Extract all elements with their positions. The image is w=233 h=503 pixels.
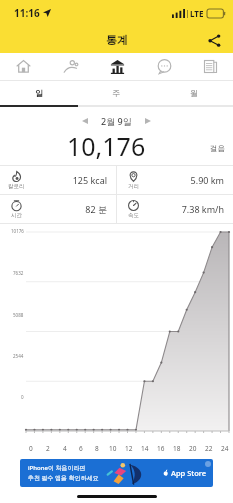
staticText: 걸음: [210, 144, 225, 153]
staticText: 6: [79, 444, 83, 453]
button[interactable]: Home: [0, 53, 47, 80]
button[interactable]: 속도: [117, 195, 233, 223]
staticText: LTE: [190, 8, 204, 19]
staticText: 7.38 km/h: [181, 203, 224, 215]
button[interactable]: 시간: [0, 195, 116, 223]
button[interactable]: Previous day: [77, 113, 93, 129]
staticText: 추천 필수 앱을 확인하세요: [28, 474, 99, 482]
staticText: 10: [109, 444, 117, 453]
button[interactable]: 일: [0, 81, 77, 105]
staticText: 10176: [11, 228, 24, 234]
button[interactable]: 거리: [117, 166, 233, 194]
button[interactable]: Share: [203, 29, 225, 51]
staticText: 8: [95, 444, 99, 453]
staticText: 2: [46, 444, 50, 453]
button[interactable]: Close ad: [205, 461, 211, 467]
staticText: 칼로리: [8, 183, 25, 190]
button[interactable]: Chat: [141, 53, 188, 80]
staticText: 2월 9일: [101, 115, 132, 127]
staticText: 거리: [128, 183, 139, 190]
staticText: 시간: [11, 212, 22, 219]
staticText: 통계: [106, 33, 128, 47]
staticText: 5088: [13, 312, 24, 318]
staticText: 주: [112, 88, 120, 98]
button[interactable]: News: [188, 53, 233, 80]
staticText: 125 kcal: [72, 174, 107, 186]
staticText: 24: [221, 444, 229, 453]
staticText: 11:16: [14, 6, 40, 20]
staticText: 4: [63, 444, 67, 453]
staticText: 0: [29, 444, 33, 453]
button[interactable]: iPhone이 처음이라면: [20, 459, 213, 487]
staticText: 18: [173, 444, 181, 453]
staticText: 속도: [128, 212, 139, 219]
staticText: 14: [141, 444, 149, 453]
staticText: 82 분: [85, 203, 107, 215]
staticText: 10,176: [67, 129, 146, 159]
button[interactable]: Next day: [140, 113, 156, 129]
button[interactable]: 주: [77, 81, 155, 105]
staticText: 16: [157, 444, 165, 453]
staticText: 7632: [13, 270, 24, 276]
staticText: 20: [189, 444, 197, 453]
button[interactable]: 칼로리: [0, 166, 116, 194]
button[interactable]: 월: [155, 81, 233, 105]
staticText: iPhone이 처음이라면: [28, 464, 86, 472]
staticText: 2544: [13, 353, 24, 359]
staticText: 22: [205, 444, 213, 453]
staticText: 일: [35, 88, 43, 98]
button[interactable]: Friends: [47, 53, 94, 80]
staticText: App Store: [171, 468, 207, 478]
button[interactable]: Statistics: [94, 53, 141, 80]
staticText: 월: [190, 88, 198, 98]
staticText: 12: [125, 444, 133, 453]
staticText: 5.90 km: [190, 174, 224, 186]
staticText: 0: [21, 394, 24, 400]
